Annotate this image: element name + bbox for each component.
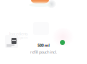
staticText: Ingredients xyxy=(9,31,28,36)
button[interactable]: Eco certified xyxy=(60,40,65,45)
staticText: refill pouch incl. xyxy=(30,49,57,55)
staticText: aqua, glycerin xyxy=(9,36,28,40)
staticText: 500 ml xyxy=(37,42,49,48)
button[interactable]: Product thumbnail xyxy=(5,35,18,48)
